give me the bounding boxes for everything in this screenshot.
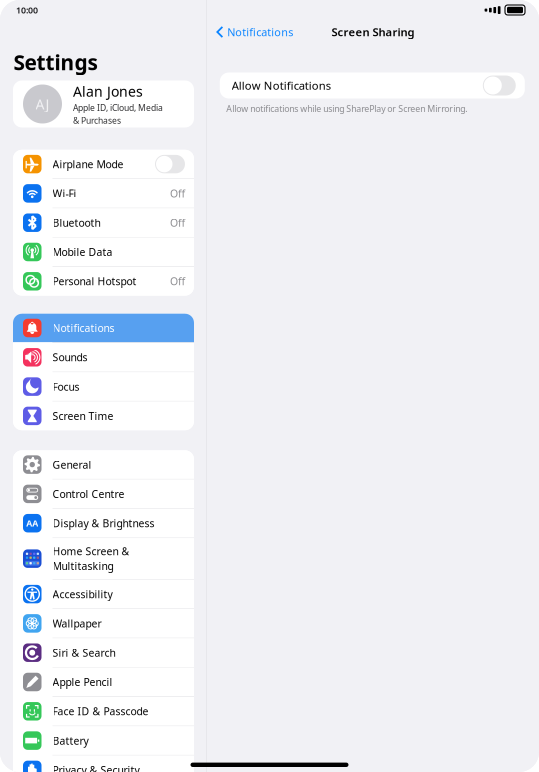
button[interactable]: Control Centre <box>13 480 194 508</box>
staticText: & Purchases <box>73 114 121 126</box>
button[interactable]: Wallpaper <box>13 609 194 638</box>
staticText: Off <box>170 274 185 288</box>
staticText: Control Centre <box>52 487 124 501</box>
staticText: Notifications <box>227 25 293 39</box>
staticText: Apple ID, iCloud, Media <box>73 102 163 113</box>
staticText: Off <box>170 186 185 200</box>
staticText: Personal Hotspot <box>52 274 136 288</box>
staticText: Accessibility <box>52 587 112 601</box>
button[interactable]: Home Screen & <box>13 538 194 579</box>
button[interactable]: Screen Time <box>13 402 194 430</box>
button[interactable]: Sounds <box>13 343 194 372</box>
staticText: Focus <box>52 379 79 394</box>
button[interactable]: Notifications <box>13 314 194 342</box>
staticText: Screen Time <box>52 409 113 423</box>
staticText: Off <box>170 216 185 230</box>
staticText: Allow Notifications <box>232 78 331 93</box>
staticText: Home Screen & <box>52 544 129 558</box>
staticText: AA <box>26 517 38 529</box>
staticText: Alan Jones <box>73 82 143 101</box>
staticText: Face ID & Passcode <box>52 704 148 718</box>
staticText: 10:00 <box>16 4 38 16</box>
button[interactable]: Siri & Search <box>13 638 194 667</box>
button[interactable]: Wi-Fi <box>13 179 194 208</box>
button[interactable]: Privacy & Security <box>13 756 194 772</box>
staticText: Multitasking <box>52 559 113 573</box>
staticText: Notifications <box>52 321 114 335</box>
button[interactable]: Notifications <box>207 19 299 45</box>
button[interactable]: Face ID & Passcode <box>13 697 194 726</box>
staticText: Display & Brightness <box>52 516 154 530</box>
button[interactable]: Bluetooth <box>13 208 194 237</box>
staticText: Siri & Search <box>52 646 115 660</box>
button[interactable]: Mobile Data <box>13 238 194 266</box>
staticText: Screen Sharing <box>331 24 414 40</box>
button[interactable]: AJ <box>13 80 194 127</box>
button[interactable]: Personal Hotspot <box>13 267 194 296</box>
staticText: Sounds <box>52 350 87 364</box>
staticText: Wi-Fi <box>52 186 76 200</box>
staticText: Apple Pencil <box>52 675 112 689</box>
staticText: Settings <box>13 48 97 76</box>
staticText: Wallpaper <box>52 616 101 630</box>
button[interactable]: Accessibility <box>13 580 194 608</box>
staticText: Mobile Data <box>52 245 112 259</box>
button[interactable]: General <box>13 450 194 479</box>
staticText: Battery <box>52 733 88 748</box>
staticText: Bluetooth <box>52 216 100 230</box>
staticText: General <box>52 457 91 472</box>
button[interactable]: AA <box>13 509 194 537</box>
button[interactable]: Battery <box>13 726 194 755</box>
staticText: Privacy & Security <box>52 763 139 772</box>
button[interactable]: Focus <box>13 372 194 401</box>
button[interactable]: Airplane Mode <box>13 150 194 178</box>
staticText: AJ <box>35 94 49 114</box>
staticText: Allow notifications while using SharePla… <box>226 102 467 114</box>
button[interactable]: Apple Pencil <box>13 668 194 696</box>
staticText: Airplane Mode <box>52 157 123 171</box>
